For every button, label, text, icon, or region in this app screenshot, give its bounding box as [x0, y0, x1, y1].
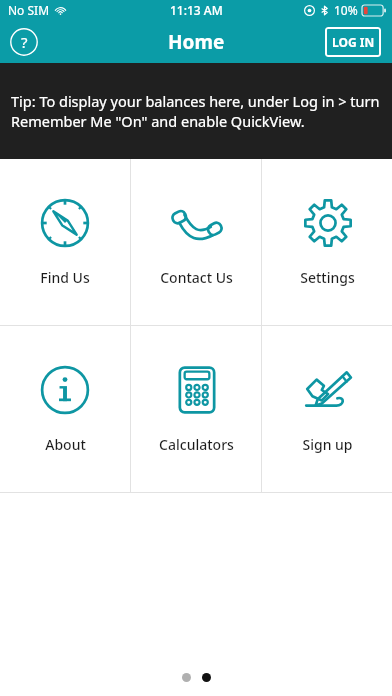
- button[interactable]: Sign up: [262, 326, 392, 492]
- button[interactable]: Help: [9, 27, 39, 57]
- staticText: Tip: To display your balances here, unde…: [11, 91, 381, 132]
- staticText: 10%: [334, 2, 358, 18]
- button[interactable]: Contact Us: [131, 159, 261, 325]
- button[interactable]: Calculators: [131, 326, 261, 492]
- button[interactable]: LOG IN: [325, 27, 381, 57]
- staticText: No SIM: [8, 2, 50, 18]
- staticText: 11:13 AM: [170, 2, 223, 18]
- staticText: Home: [168, 29, 225, 55]
- button[interactable]: [182, 673, 191, 682]
- staticText: Contact Us: [160, 268, 233, 287]
- staticText: Sign up: [302, 435, 353, 454]
- button[interactable]: About: [0, 326, 130, 492]
- staticText: LOG IN: [332, 34, 375, 50]
- staticText: About: [45, 435, 86, 454]
- button[interactable]: Settings: [262, 159, 392, 325]
- button[interactable]: Find Us: [0, 159, 130, 325]
- staticText: ?: [21, 32, 28, 52]
- button[interactable]: [202, 673, 211, 682]
- staticText: Settings: [300, 268, 355, 287]
- staticText: Find Us: [40, 268, 90, 287]
- staticText: Calculators: [159, 435, 234, 454]
